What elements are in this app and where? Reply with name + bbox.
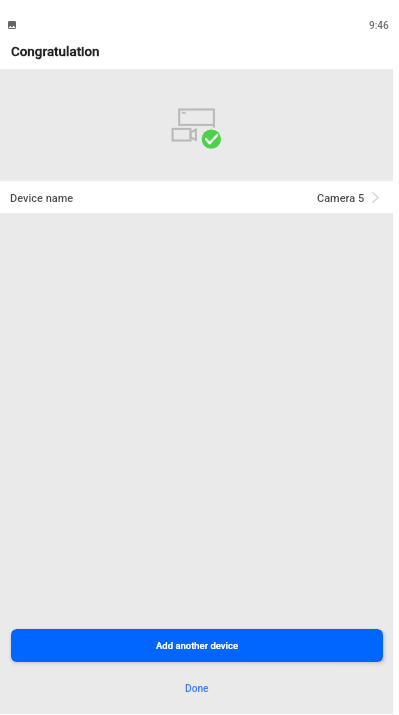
staticText: Camera 5 xyxy=(317,192,365,205)
button[interactable]: Device name xyxy=(0,181,393,213)
button[interactable]: Add another device xyxy=(11,629,383,662)
staticText: 9:46 xyxy=(369,20,389,32)
button[interactable]: Done xyxy=(171,679,223,699)
staticText: Done xyxy=(185,683,209,695)
staticText: Add another device xyxy=(156,640,238,651)
staticText: Congratulation xyxy=(11,44,100,60)
other: Screenshot xyxy=(8,21,16,29)
staticText: Device name xyxy=(10,192,74,205)
